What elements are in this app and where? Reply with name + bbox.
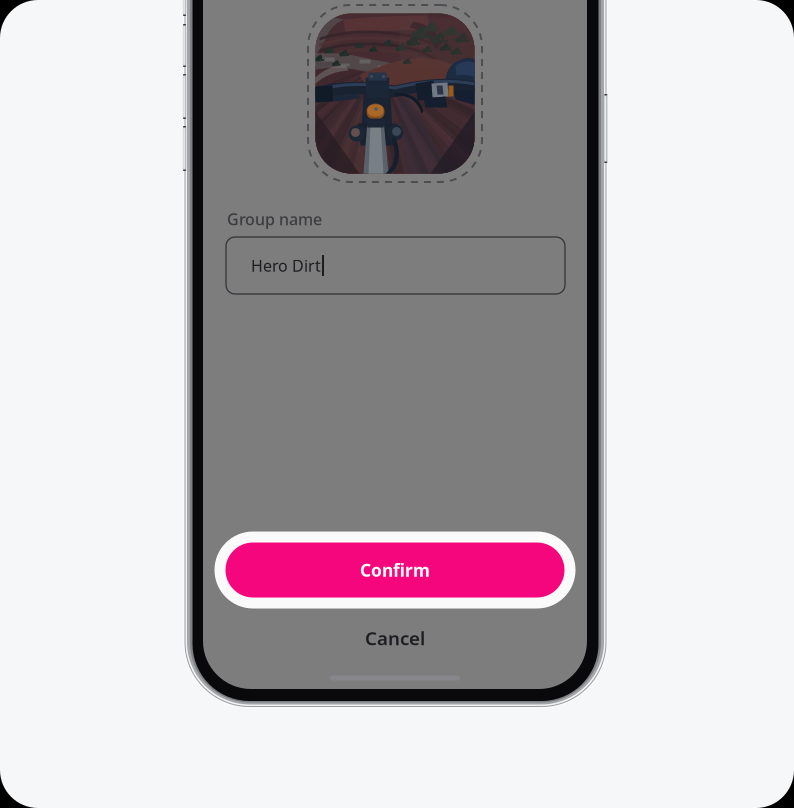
staticText: Confirm (360, 558, 430, 581)
button[interactable]: Hero Dirt (226, 237, 565, 294)
button[interactable]: Choose group photo (308, 5, 482, 182)
staticText: Hero Dirt (251, 255, 321, 276)
button[interactable]: Cancel (315, 623, 475, 653)
button[interactable]: Confirm (214, 531, 575, 608)
staticText: Group name (227, 208, 322, 230)
staticText: Cancel (365, 626, 425, 650)
